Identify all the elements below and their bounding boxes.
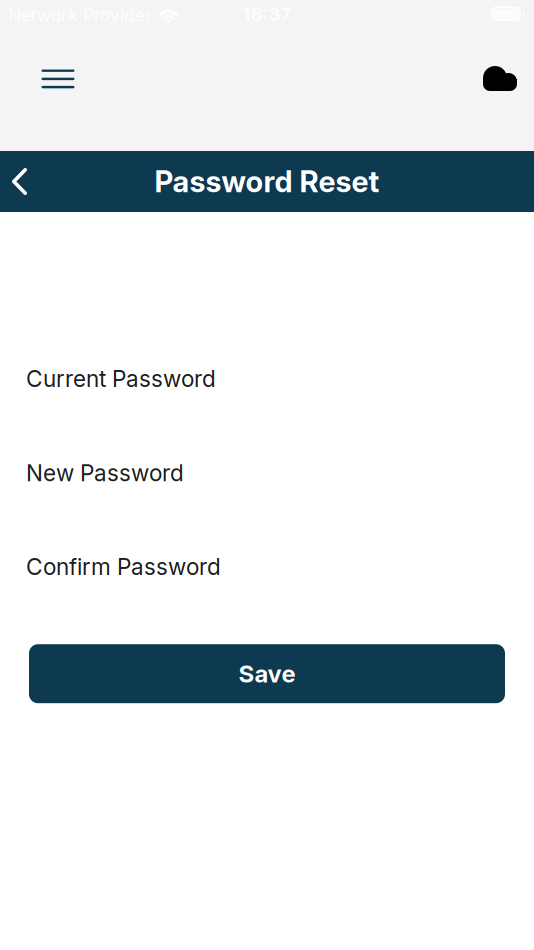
- button[interactable]: Menu: [41, 69, 74, 88]
- staticText: Confirm Password: [26, 553, 221, 580]
- staticText: Save: [238, 660, 295, 688]
- staticText: 18:37: [242, 3, 291, 25]
- button[interactable]: Back: [0, 151, 27, 212]
- button[interactable]: Save: [29, 644, 505, 703]
- button[interactable]: Cloud sync: [482, 66, 517, 91]
- staticText: New Password: [26, 460, 184, 486]
- staticText: Password Reset: [154, 164, 379, 199]
- staticText: Current Password: [26, 365, 216, 392]
